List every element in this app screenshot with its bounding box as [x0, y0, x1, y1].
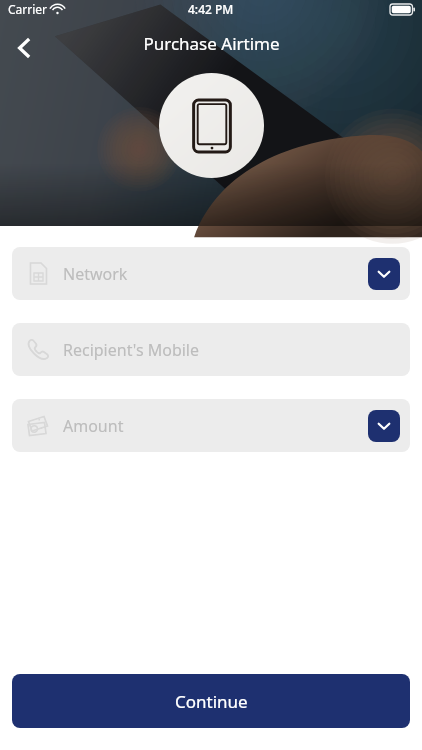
button[interactable]: Amount — [12, 399, 410, 452]
staticText: Continue — [175, 690, 248, 713]
button[interactable]: Open Amount options — [368, 410, 400, 442]
staticText: Carrier — [8, 1, 48, 17]
button[interactable]: Recipient's Mobile — [12, 323, 410, 376]
staticText: 4:42 PM — [188, 1, 234, 17]
button[interactable]: Back — [2, 26, 46, 70]
button[interactable]: Open Network options — [368, 258, 400, 290]
staticText: Network — [63, 263, 128, 285]
button[interactable]: Continue — [12, 674, 410, 728]
staticText: Purchase Airtime — [143, 32, 280, 55]
staticText: Amount — [63, 415, 124, 437]
button[interactable]: Network — [12, 247, 410, 300]
staticText: Recipient's Mobile — [63, 339, 200, 361]
